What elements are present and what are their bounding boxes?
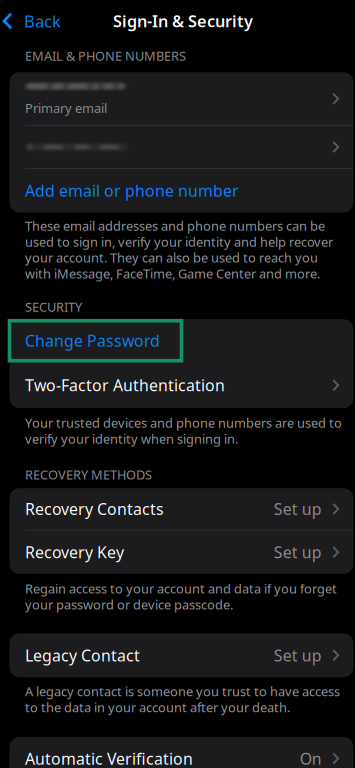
staticText: Back bbox=[24, 10, 61, 32]
staticText: Set up bbox=[274, 541, 322, 563]
staticText: SECURITY bbox=[25, 298, 82, 316]
staticText: Regain access to your account and data i… bbox=[25, 580, 337, 613]
staticText: Sign-In & Security bbox=[113, 10, 253, 32]
button[interactable]: Legacy Contact bbox=[9, 633, 353, 677]
button[interactable]: Automatic Verification bbox=[9, 737, 353, 768]
button[interactable]: Recovery Key bbox=[9, 530, 353, 574]
button[interactable]: Two-Factor Authentication bbox=[9, 362, 353, 408]
staticText: Add email or phone number bbox=[25, 180, 239, 201]
staticText: These email addresses and phone numbers … bbox=[25, 217, 333, 282]
staticText: Your trusted devices and phone numbers a… bbox=[25, 414, 342, 447]
staticText: Set up bbox=[274, 644, 322, 666]
button[interactable] bbox=[9, 126, 353, 168]
staticText: Recovery Key bbox=[25, 541, 124, 563]
staticText: Recovery Contacts bbox=[25, 498, 164, 520]
button[interactable]: Back bbox=[0, 0, 61, 42]
staticText: EMAIL & PHONE NUMBERS bbox=[25, 47, 186, 64]
staticText: Automatic Verification bbox=[25, 748, 193, 768]
staticText: Primary email bbox=[25, 99, 107, 117]
staticText: Legacy Contact bbox=[25, 644, 140, 666]
staticText: RECOVERY METHODS bbox=[25, 466, 152, 483]
staticText: Set up bbox=[274, 498, 322, 520]
staticText: Two-Factor Authentication bbox=[25, 374, 225, 396]
button[interactable]: Primary email bbox=[9, 72, 353, 125]
button[interactable]: Add email or phone number bbox=[9, 169, 353, 212]
staticText: Change Password bbox=[25, 330, 160, 351]
button[interactable]: Change Password bbox=[9, 319, 353, 362]
staticText: A legacy contact is someone you trust to… bbox=[25, 683, 340, 716]
button[interactable]: Recovery Contacts bbox=[9, 488, 353, 530]
staticText: On bbox=[300, 748, 322, 768]
